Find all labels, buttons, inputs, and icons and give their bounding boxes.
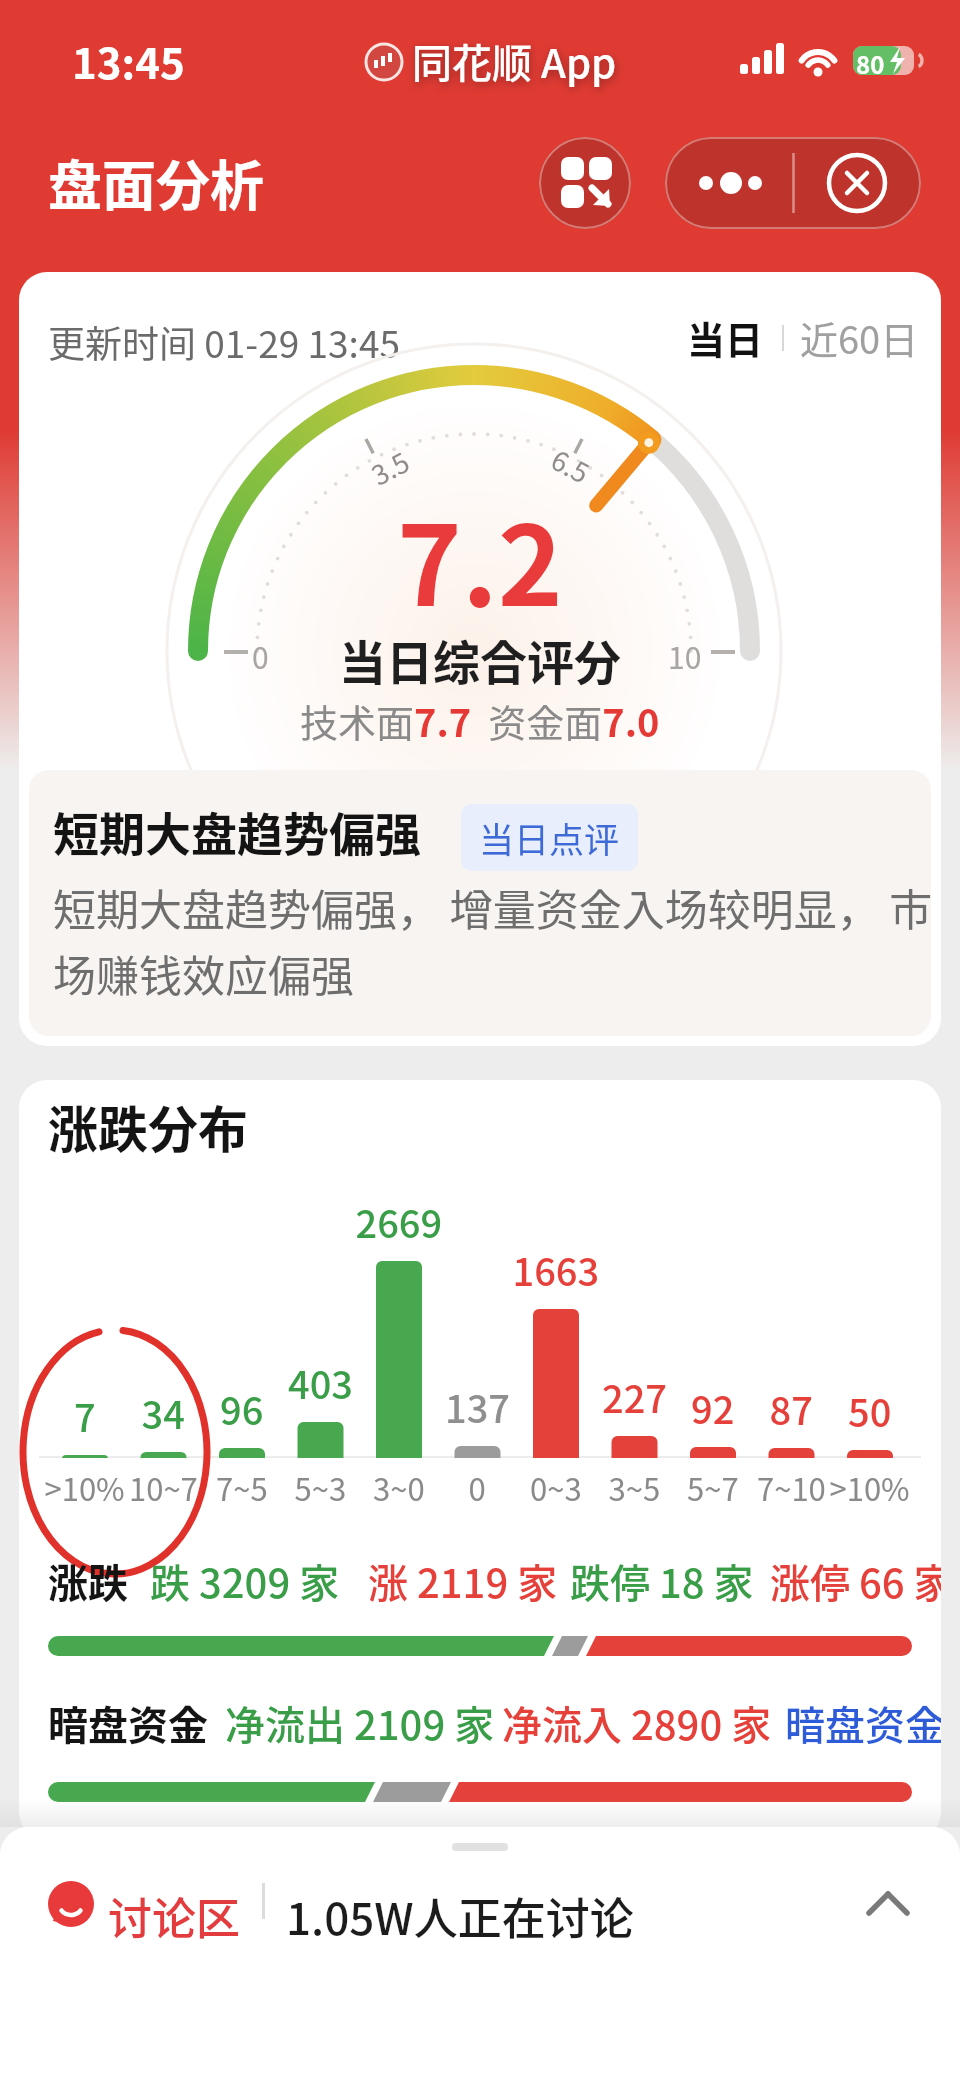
staticText: 涨 2119 家 <box>368 1552 558 1610</box>
staticText: 净流出 2109 家 <box>225 1694 495 1752</box>
staticText: 7.2 <box>397 478 563 637</box>
button[interactable] <box>0 1875 960 1937</box>
staticText: 80 <box>856 46 885 81</box>
staticText: 同花顺 App <box>412 32 617 90</box>
staticText: 跌 3209 家 <box>150 1552 340 1610</box>
staticText: 1.05W人正在讨论 <box>286 1884 634 1948</box>
staticText: 更新时间 01-29 13:45 <box>48 315 400 369</box>
button[interactable] <box>665 137 793 229</box>
button[interactable] <box>866 1890 910 1916</box>
button[interactable]: 当日 <box>687 310 919 365</box>
staticText: 涨跌 <box>48 1552 128 1610</box>
staticText: 讨论区 <box>108 1884 240 1948</box>
staticText: 涨跌分布 <box>48 1090 248 1162</box>
button[interactable]: 当日点评 <box>461 804 638 871</box>
staticText: 技术面7.7 资金面7.0 <box>300 693 660 748</box>
staticText: 13:45 <box>72 30 185 91</box>
staticText: 0 <box>252 634 269 677</box>
button[interactable] <box>793 137 921 229</box>
staticText: 当日 <box>687 310 764 365</box>
staticText: 当日综合评分 <box>339 625 621 693</box>
staticText: 短期大盘趋势偏强， 增量资金入场较明显， 市 场赚钱效应偏强 <box>53 876 931 1004</box>
staticText: 暗盘资金 <box>48 1694 208 1752</box>
staticText: 涨停 66 家 <box>770 1552 941 1610</box>
staticText: 当日点评 <box>479 812 620 863</box>
staticText: 短期大盘趋势偏强 <box>53 798 421 865</box>
staticText: 3.5 <box>364 441 416 494</box>
button[interactable]: 暗盘资金 <box>19 1080 179 1138</box>
staticText: 盘面分析 <box>48 143 264 221</box>
staticText: 近60日 <box>800 310 919 365</box>
button[interactable] <box>539 137 631 229</box>
staticText: 净流入 2890 家 <box>502 1694 772 1752</box>
staticText: 跌停 18 家 <box>570 1552 754 1610</box>
staticText: 6.5 <box>545 439 597 492</box>
staticText: 10 <box>668 634 702 677</box>
